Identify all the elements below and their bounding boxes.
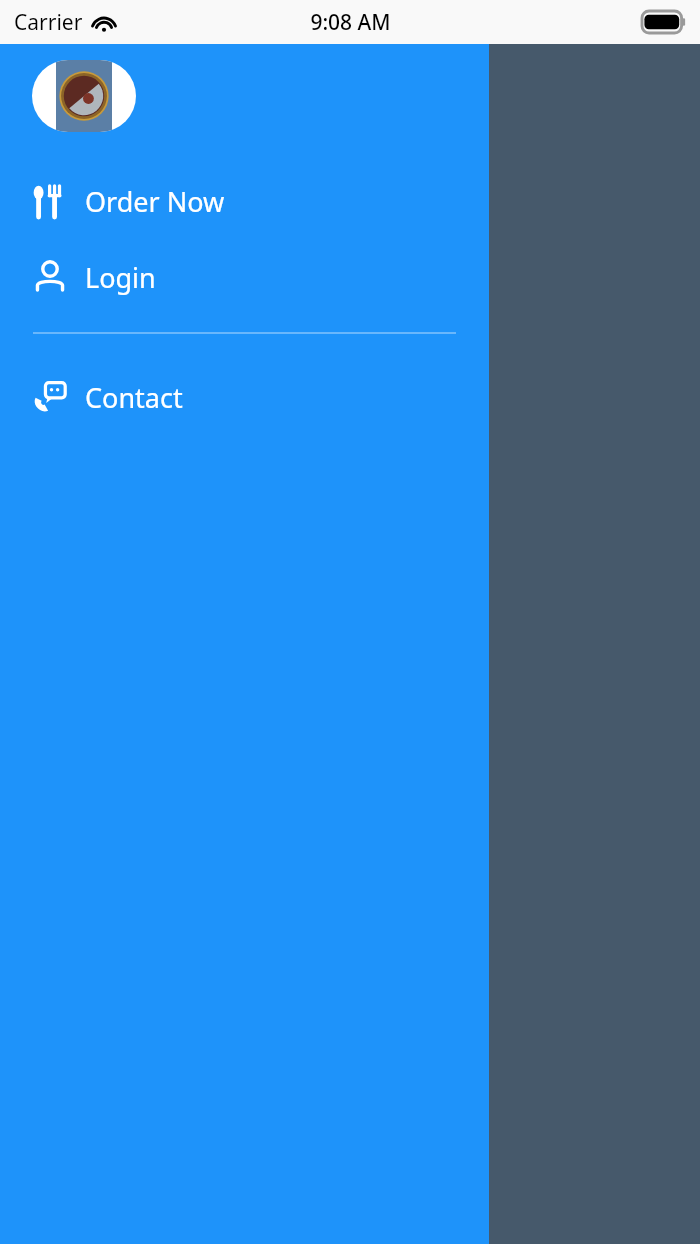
- button[interactable]: Contact: [0, 370, 489, 424]
- button[interactable]: Cart: [118, 80, 190, 152]
- staticText: Sausage Dish: [70, 234, 228, 268]
- staticText: Carrier: [14, 8, 83, 37]
- button[interactable]: Restaurant logo: [32, 60, 136, 132]
- staticText: Login: [85, 259, 156, 296]
- staticText: 9:08 AM: [310, 8, 391, 37]
- button[interactable]: Login: [0, 250, 489, 304]
- staticText: Order Now: [85, 183, 225, 220]
- staticText: Contact: [85, 379, 183, 416]
- button[interactable]: Order Now: [0, 174, 489, 228]
